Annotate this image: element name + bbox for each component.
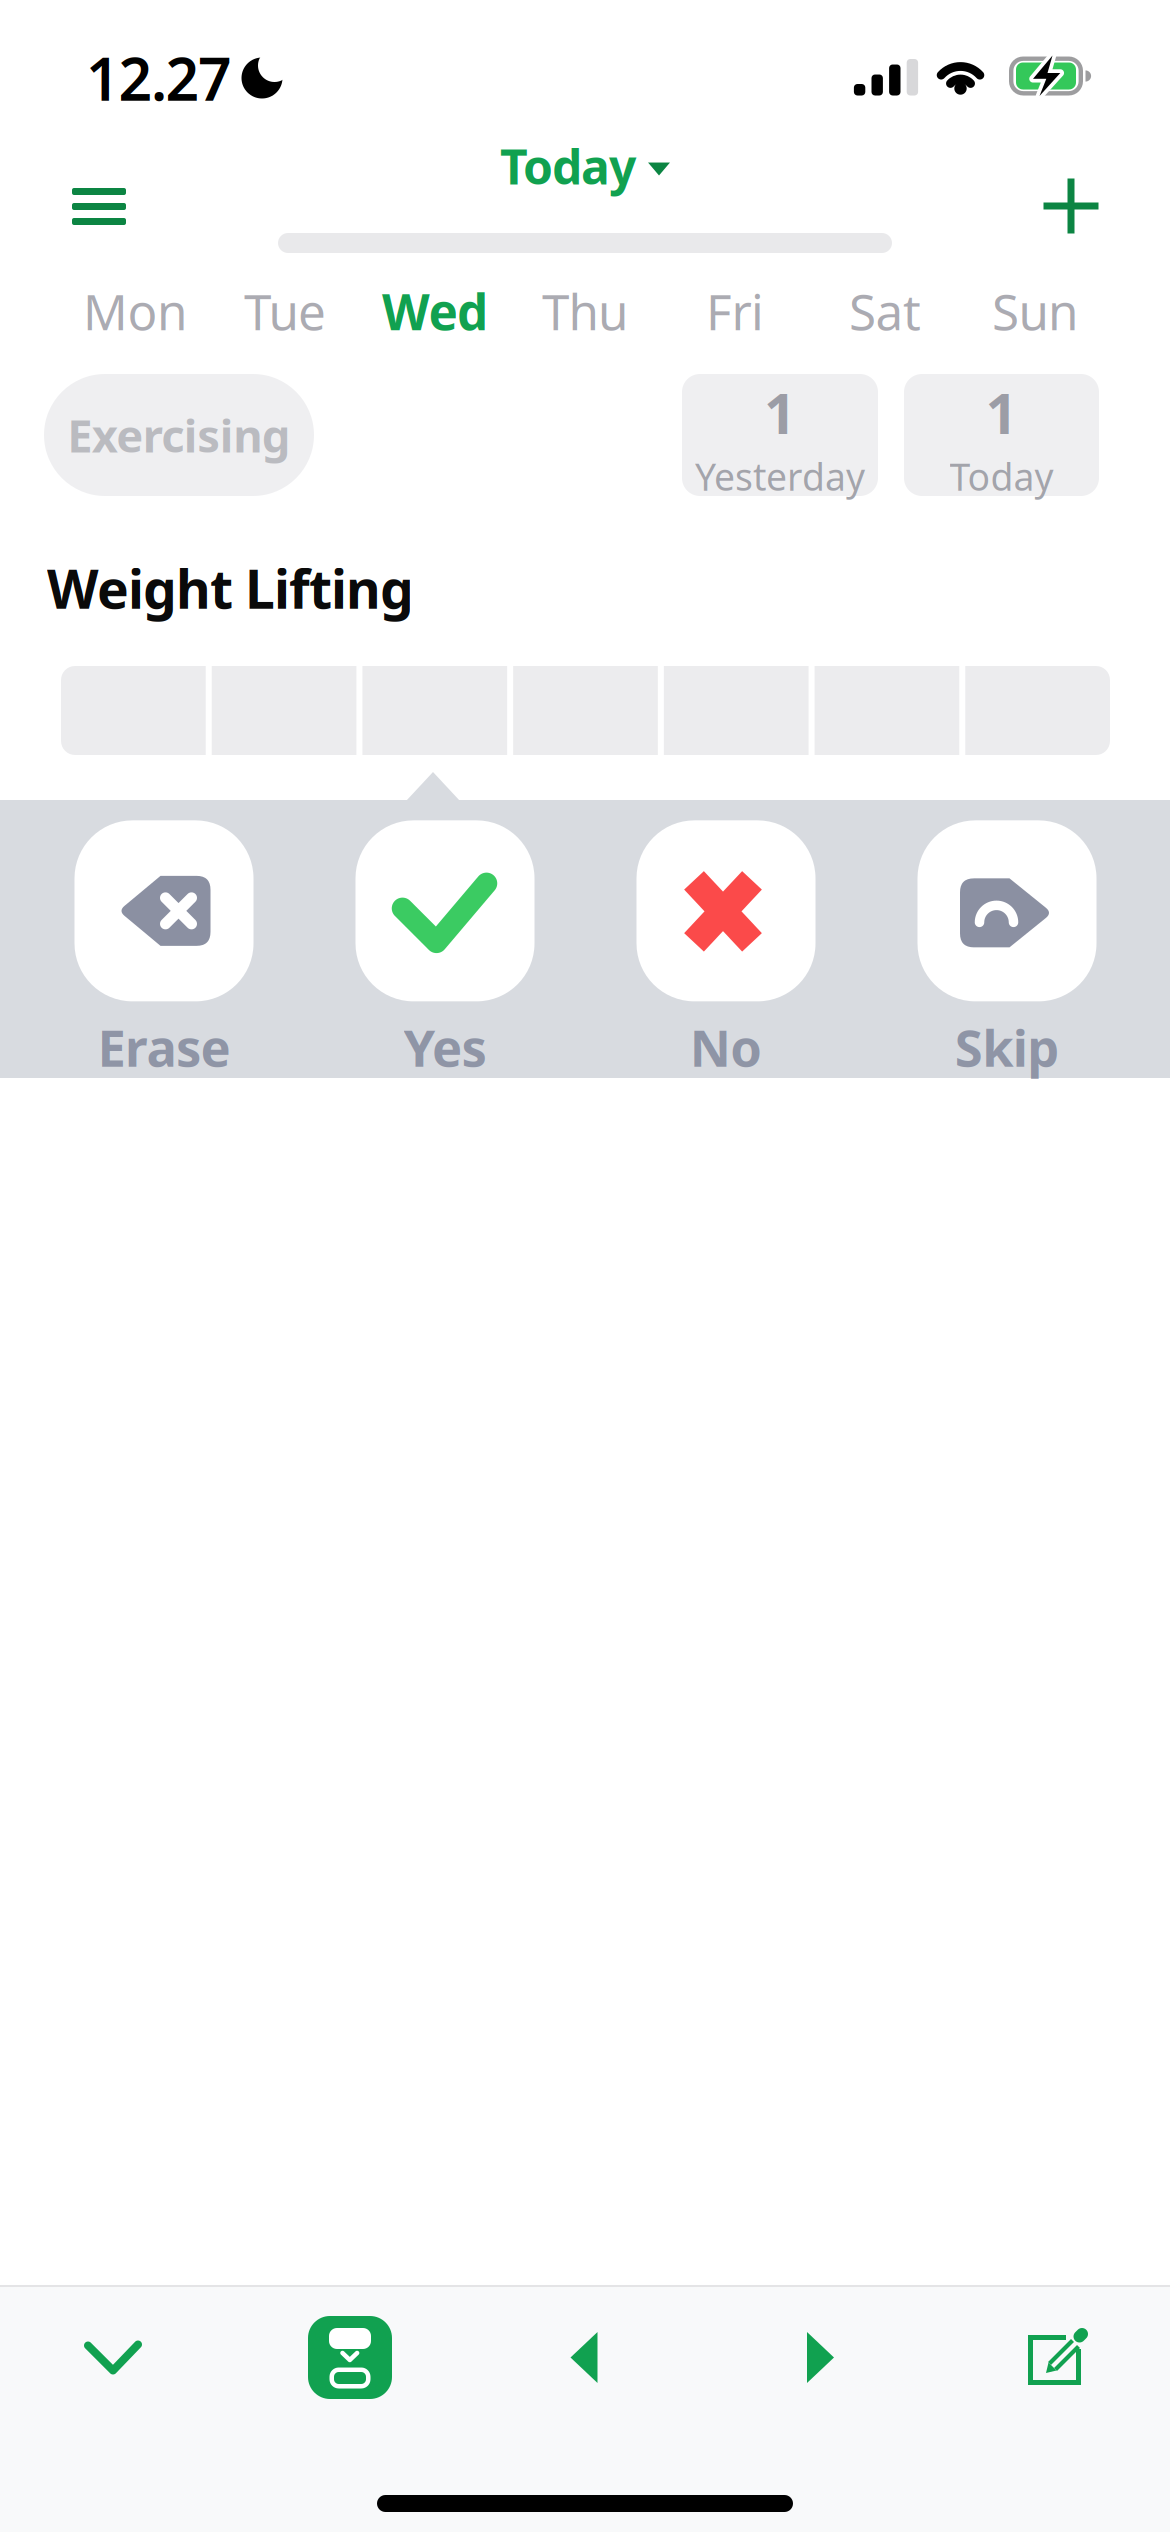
button[interactable]: 1 bbox=[904, 374, 1099, 496]
button[interactable] bbox=[570, 2332, 598, 2384]
staticText: Yes bbox=[403, 1013, 486, 1081]
button[interactable] bbox=[72, 188, 126, 225]
staticText: Fri bbox=[706, 278, 764, 344]
button[interactable] bbox=[86, 2343, 140, 2373]
staticText: Mon bbox=[83, 278, 187, 344]
staticText: Thu bbox=[542, 278, 628, 344]
button[interactable] bbox=[1043, 178, 1098, 233]
staticText: 12.27 bbox=[86, 39, 232, 117]
button[interactable] bbox=[806, 2332, 834, 2384]
staticText: 1 bbox=[764, 375, 796, 449]
staticText: No bbox=[690, 1013, 762, 1081]
staticText: Today bbox=[500, 134, 636, 198]
button[interactable]: Exercising bbox=[44, 374, 314, 496]
staticText: Skip bbox=[955, 1013, 1059, 1081]
staticText: Exercising bbox=[67, 405, 291, 465]
staticText: Yesterday bbox=[695, 451, 865, 501]
button[interactable]: 1 bbox=[682, 374, 878, 496]
button[interactable]: Today bbox=[500, 134, 670, 198]
button[interactable]: No bbox=[636, 820, 815, 1081]
button[interactable] bbox=[1030, 2327, 1090, 2387]
button[interactable]: Skip bbox=[917, 820, 1096, 1081]
staticText: Sun bbox=[992, 278, 1078, 344]
staticText: Tue bbox=[244, 278, 326, 344]
staticText: Wed bbox=[382, 278, 488, 344]
staticText: Today bbox=[949, 451, 1053, 501]
button[interactable] bbox=[308, 2316, 392, 2399]
staticText: Weight Lifting bbox=[47, 553, 414, 623]
staticText: 1 bbox=[985, 375, 1017, 449]
button[interactable]: Erase bbox=[74, 820, 253, 1081]
button[interactable]: Yes bbox=[355, 820, 534, 1081]
staticText: Sat bbox=[849, 278, 921, 344]
staticText: Erase bbox=[97, 1013, 230, 1081]
